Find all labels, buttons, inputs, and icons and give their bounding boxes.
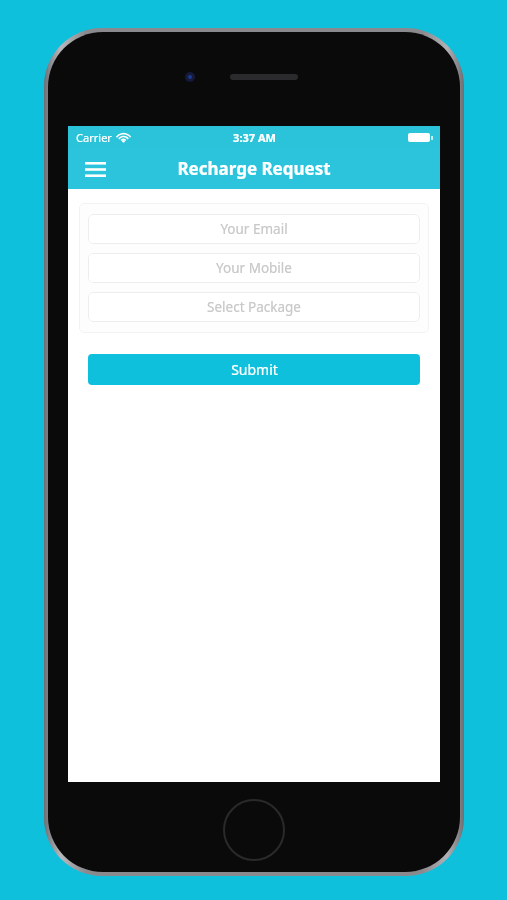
button[interactable]: Open navigation menu — [78, 152, 112, 186]
staticText: Your Mobile — [216, 259, 292, 277]
button[interactable]: Submit — [88, 354, 420, 385]
staticText: Carrier — [76, 130, 112, 145]
staticText: 3:37 AM — [233, 130, 276, 145]
staticText: Your Email — [220, 220, 288, 238]
other: Home — [223, 799, 285, 861]
button[interactable]: Your Mobile — [88, 253, 420, 283]
staticText: Select Package — [207, 298, 301, 316]
staticText: Recharge Request — [177, 157, 331, 180]
staticText: Submit — [231, 360, 278, 379]
button[interactable]: Select Package — [88, 292, 420, 322]
button[interactable]: Your Email — [88, 214, 420, 244]
